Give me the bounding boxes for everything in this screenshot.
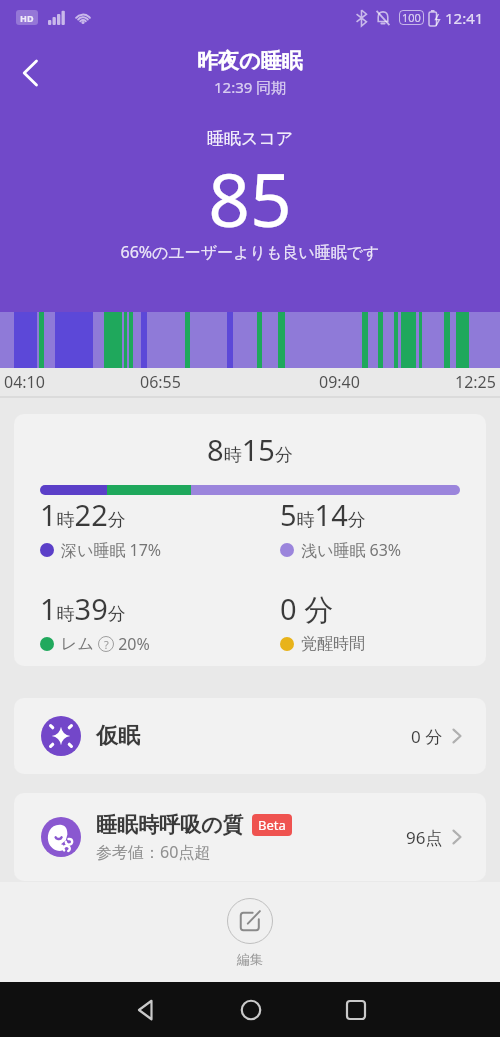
staticText: ? bbox=[104, 637, 109, 652]
staticText: 20% bbox=[114, 633, 150, 655]
staticText: 覚醒時間 bbox=[301, 634, 365, 654]
staticText: 0 分 bbox=[411, 725, 443, 748]
button[interactable]: 睡眠時呼吸の質 bbox=[14, 793, 486, 881]
staticText: 参考値：60点超 bbox=[96, 841, 211, 863]
button[interactable]: 仮眠 bbox=[14, 698, 486, 774]
staticText: 96点 bbox=[406, 826, 443, 849]
button[interactable] bbox=[223, 982, 278, 1037]
button[interactable]: 編集 bbox=[227, 898, 273, 967]
staticText: 04:10 bbox=[4, 371, 45, 393]
staticText: 12:39 同期 bbox=[214, 77, 287, 97]
staticText: 12:25 bbox=[455, 371, 496, 393]
staticText: 8時15分 bbox=[40, 430, 460, 469]
staticText: 66%のユーザーよりも良い睡眠です bbox=[0, 241, 500, 263]
staticText: 浅い睡眠 63% bbox=[301, 539, 402, 561]
staticText: 睡眠スコア bbox=[0, 128, 500, 149]
staticText: 09:40 bbox=[319, 371, 360, 393]
staticText: 1時39分 bbox=[40, 589, 126, 628]
staticText: 06:55 bbox=[140, 371, 181, 393]
staticText: Beta bbox=[258, 816, 286, 834]
staticText: 仮眠 bbox=[96, 722, 140, 750]
staticText: レム bbox=[61, 634, 94, 654]
staticText: 100 bbox=[402, 10, 421, 25]
staticText: 12:41 bbox=[445, 8, 484, 28]
button[interactable] bbox=[328, 982, 383, 1037]
staticText: 深い睡眠 17% bbox=[61, 539, 162, 561]
staticText: HD bbox=[20, 12, 34, 24]
staticText: 5時14分 bbox=[280, 495, 366, 534]
button[interactable] bbox=[10, 53, 50, 93]
staticText: 睡眠時呼吸の質 bbox=[96, 812, 244, 838]
staticText: 編集 bbox=[237, 951, 263, 967]
staticText: 0 分 bbox=[280, 589, 334, 629]
staticText: 85 bbox=[0, 149, 500, 248]
staticText: 昨夜の睡眠 bbox=[197, 48, 303, 74]
staticText: 1時22分 bbox=[40, 495, 126, 534]
button[interactable] bbox=[118, 982, 173, 1037]
